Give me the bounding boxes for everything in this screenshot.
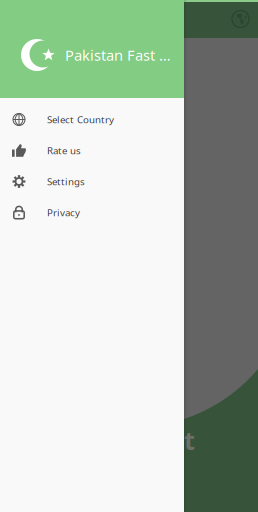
- staticText: Settings: [47, 175, 85, 188]
- button[interactable]: Select Country: [232, 10, 258, 27]
- staticText: Rate us: [47, 144, 81, 157]
- button[interactable]: Privacy: [0, 197, 184, 228]
- button[interactable]: Settings: [0, 166, 184, 197]
- staticText: Privacy: [47, 206, 80, 219]
- staticText: t: [184, 423, 195, 457]
- staticText: Pakistan Fast …: [65, 45, 171, 65]
- button[interactable]: Rate us: [0, 135, 184, 166]
- button[interactable]: Select Country: [0, 104, 184, 135]
- staticText: Select Country: [47, 113, 114, 126]
